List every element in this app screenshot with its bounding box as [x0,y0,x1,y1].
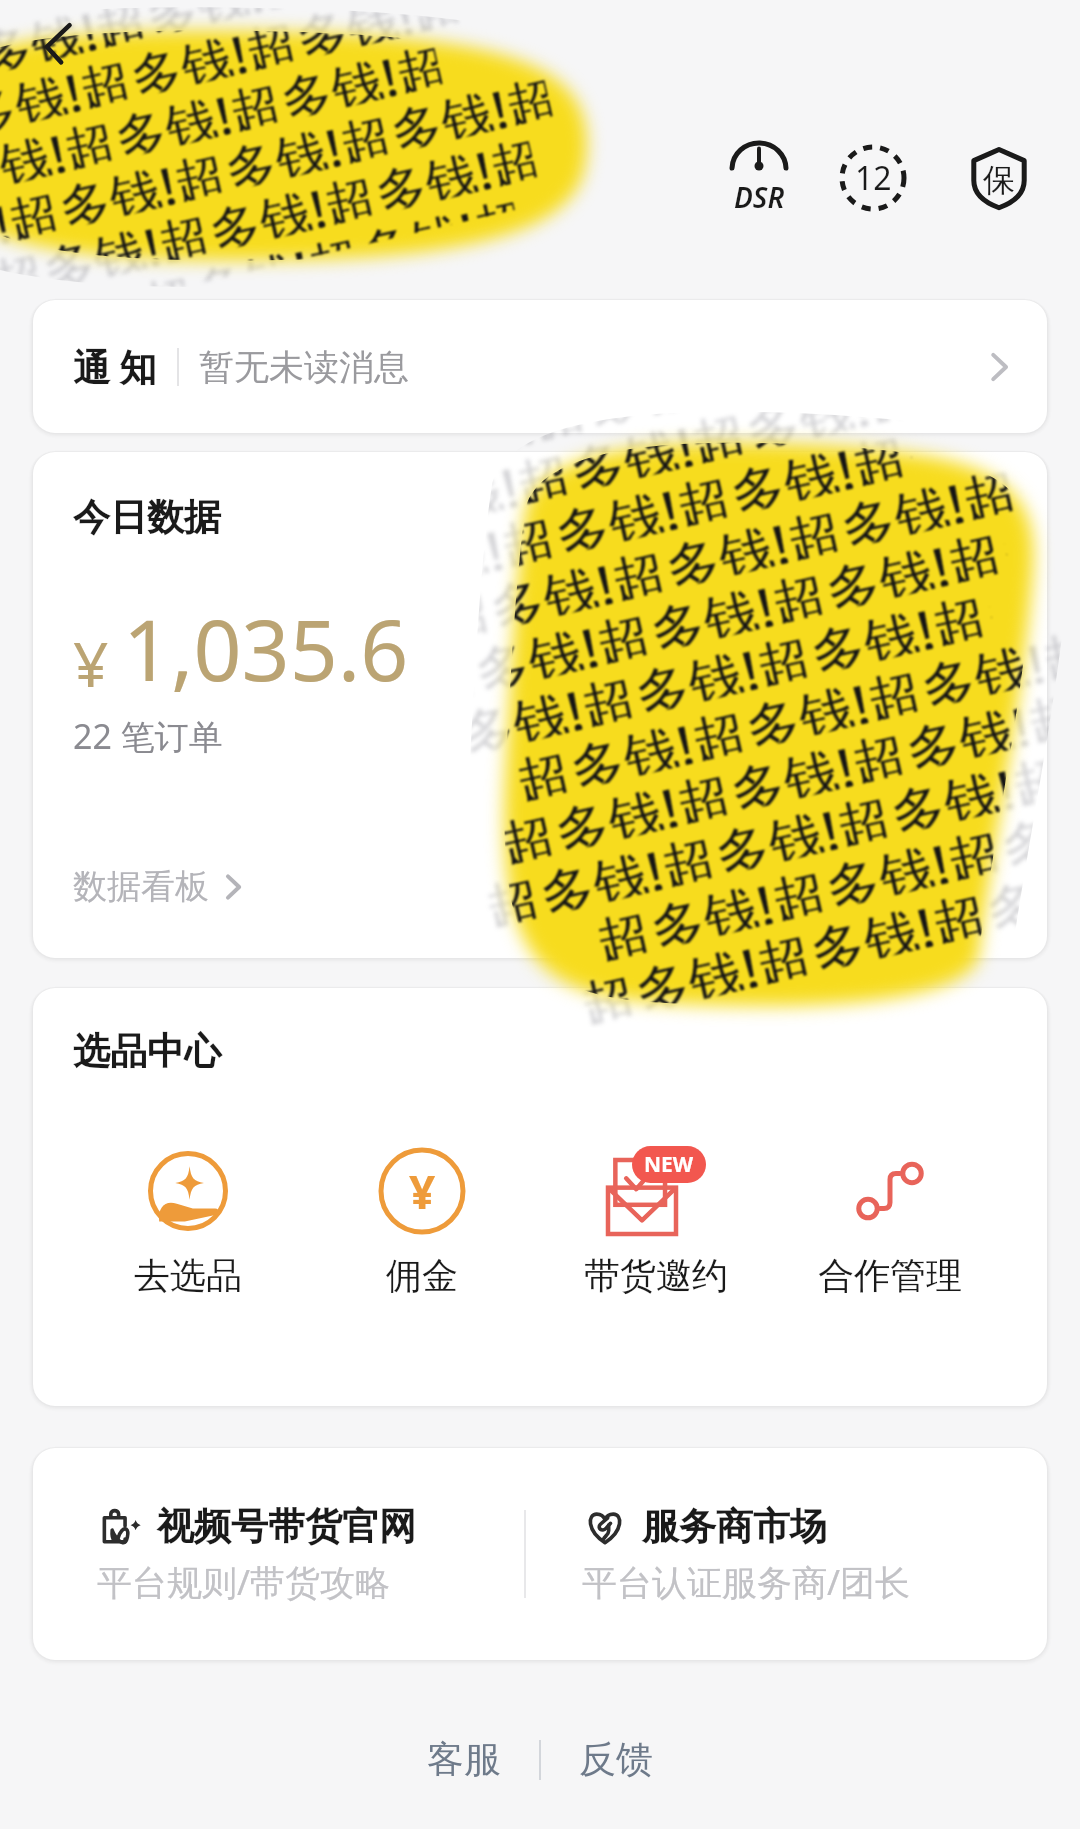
staticText: 佣金 [386,1253,458,1298]
staticText: 去选品 [134,1253,242,1298]
staticText: 1,035.6 [123,591,409,705]
staticText: 超多钱!超多钱!超多钱!超多钱!超多钱!超多钱!超多钱!超多钱!超多钱!超多钱! [0,123,537,290]
staticText: 超多钱!超多钱!超多钱!超多钱!超多钱!超多钱!超多钱!超多钱!超多钱!超多钱! [508,611,1066,803]
button[interactable]: Protection [951,130,1047,226]
button[interactable]: 去选品 [71,1141,305,1298]
staticText: 超多钱!超多钱!超多钱!超多钱!超多钱!超多钱!超多钱!超多钱!超多钱!超多钱! [493,675,1066,866]
staticText: 超多钱!超多钱!超多钱!超多钱!超多钱!超多钱!超多钱!超多钱!超多钱!超多钱! [0,123,537,290]
staticText: 超多钱!超多钱!超多钱!超多钱!超多钱!超多钱!超多钱!超多钱!超多钱!超多钱! [573,835,1066,1026]
staticText: ¥ [73,621,109,705]
staticText: 超多钱!超多钱!超多钱!超多钱!超多钱!超多钱!超多钱!超多钱!超多钱!超多钱! [478,738,1066,929]
staticText: 超多钱!超多钱!超多钱!超多钱!超多钱!超多钱!超多钱!超多钱!超多钱!超多钱! [466,404,931,546]
staticText: 超多钱!超多钱!超多钱!超多钱!超多钱!超多钱!超多钱!超多钱!超多钱!超多钱! [588,772,1066,963]
staticText: 超多钱!超多钱!超多钱!超多钱!超多钱!超多钱!超多钱!超多钱!超多钱!超多钱! [508,611,1066,803]
staticText: 客服 [427,1736,501,1783]
staticText: 今日数据 [73,494,221,541]
staticText: 超多钱!超多钱!超多钱!超多钱!超多钱!超多钱!超多钱!超多钱!超多钱!超多钱! [0,0,458,187]
staticText: 超多钱!超多钱!超多钱!超多钱!超多钱!超多钱!超多钱!超多钱!超多钱!超多钱! [0,185,515,290]
button[interactable]: 客服 [389,1724,539,1795]
staticText: 超多钱!超多钱!超多钱!超多钱!超多钱!超多钱!超多钱!超多钱!超多钱!超多钱! [493,675,1066,866]
staticText: 超多钱!超多钱!超多钱!超多钱!超多钱!超多钱!超多钱!超多钱!超多钱!超多钱! [466,417,916,609]
staticText: 超多钱!超多钱!超多钱!超多钱!超多钱!超多钱!超多钱!超多钱!超多钱!超多钱! [0,30,443,248]
staticText: 超多钱!超多钱!超多钱!超多钱!超多钱!超多钱!超多钱!超多钱!超多钱!超多钱! [466,451,1026,643]
staticText: 暂无未读消息 [199,345,409,389]
staticText: 超多钱!超多钱!超多钱!超多钱!超多钱!超多钱!超多钱!超多钱!超多钱!超多钱! [466,577,996,769]
staticText: 超多钱!超多钱!超多钱!超多钱!超多钱!超多钱!超多钱!超多钱!超多钱!超多钱! [466,404,931,546]
staticText: 视频号带货官网 [157,1503,416,1550]
button[interactable]: ¥ [305,1141,539,1298]
staticText: 超多钱!超多钱!超多钱!超多钱!超多钱!超多钱!超多钱!超多钱!超多钱!超多钱! [466,514,1011,706]
staticText: 超多钱!超多钱!超多钱!超多钱!超多钱!超多钱!超多钱!超多钱!超多钱!超多钱! [0,62,553,280]
staticText: 超多钱!超多钱!超多钱!超多钱!超多钱!超多钱!超多钱!超多钱!超多钱!超多钱! [0,185,515,290]
staticText: 超多钱!超多钱!超多钱!超多钱!超多钱!超多钱!超多钱!超多钱!超多钱!超多钱! [0,0,474,126]
button[interactable]: Back [24,12,84,72]
staticText: 超多钱!超多钱!超多钱!超多钱!超多钱!超多钱!超多钱!超多钱!超多钱!超多钱! [573,835,1066,1026]
staticText: 带货邀约 [584,1253,728,1298]
staticText: 22 笔订单 [73,713,223,759]
staticText: 通 知 [73,341,157,392]
staticText: 超多钱!超多钱!超多钱!超多钱!超多钱!超多钱!超多钱!超多钱!超多钱!超多钱! [466,451,1026,643]
staticText: 保 [983,160,1015,200]
button[interactable]: NEW [539,1141,773,1298]
staticText: 平台认证服务商/团长 [582,1558,911,1606]
button[interactable]: 数据看板 [73,865,247,958]
staticText: 超多钱!超多钱!超多钱!超多钱!超多钱!超多钱!超多钱!超多钱!超多钱!超多钱! [0,30,443,248]
staticText: ¥ [409,1160,436,1223]
button[interactable]: 反馈 [541,1724,691,1795]
button[interactable]: Messages [825,130,921,226]
staticText: 超多钱!超多钱!超多钱!超多钱!超多钱!超多钱!超多钱!超多钱!超多钱!超多钱! [588,772,1066,963]
staticText: 数据看板 [73,865,209,908]
staticText: 超多钱!超多钱!超多钱!超多钱!超多钱!超多钱!超多钱!超多钱!超多钱!超多钱! [466,417,916,609]
staticText: 合作管理 [818,1253,962,1298]
staticText: 超多钱!超多钱!超多钱!超多钱!超多钱!超多钱!超多钱!超多钱!超多钱!超多钱! [558,898,1066,1035]
staticText: 超多钱!超多钱!超多钱!超多钱!超多钱!超多钱!超多钱!超多钱!超多钱!超多钱! [0,0,474,126]
staticText: 12 [855,156,892,200]
staticText: DSR [734,178,785,216]
staticText: 超多钱!超多钱!超多钱!超多钱!超多钱!超多钱!超多钱!超多钱!超多钱!超多钱! [466,404,946,483]
staticText: 选品中心 [73,1028,221,1075]
staticText: 超多钱!超多钱!超多钱!超多钱!超多钱!超多钱!超多钱!超多钱!超多钱!超多钱! [0,0,458,187]
button[interactable]: 服务商市场 [526,1503,1047,1606]
staticText: 超多钱!超多钱!超多钱!超多钱!超多钱!超多钱!超多钱!超多钱!超多钱!超多钱! [466,404,946,483]
button[interactable]: 视频号带货官网 [33,1503,524,1606]
staticText: 服务商市场 [642,1503,827,1550]
button[interactable]: DSR [711,130,807,226]
staticText: 超多钱!超多钱!超多钱!超多钱!超多钱!超多钱!超多钱!超多钱!超多钱!超多钱! [558,898,1066,1035]
staticText: 平台规则/带货攻略 [97,1558,391,1606]
staticText: NEW [644,1150,694,1179]
staticText: 超多钱!超多钱!超多钱!超多钱!超多钱!超多钱!超多钱!超多钱!超多钱!超多钱! [466,577,996,769]
button[interactable]: 通 知 [33,300,1047,433]
staticText: 超多钱!超多钱!超多钱!超多钱!超多钱!超多钱!超多钱!超多钱!超多钱!超多钱! [0,62,553,280]
staticText: 超多钱!超多钱!超多钱!超多钱!超多钱!超多钱!超多钱!超多钱!超多钱!超多钱! [478,738,1066,929]
staticText: 反馈 [579,1736,653,1783]
staticText: 超多钱!超多钱!超多钱!超多钱!超多钱!超多钱!超多钱!超多钱!超多钱!超多钱! [466,514,1011,706]
button[interactable]: 合作管理 [773,1141,1007,1298]
